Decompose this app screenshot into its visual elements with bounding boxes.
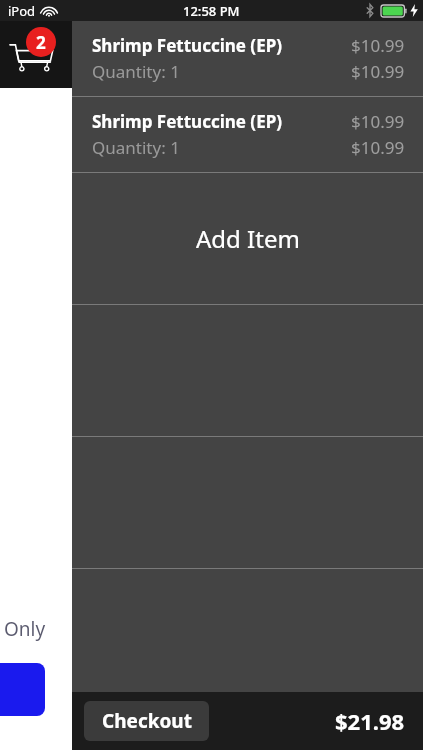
staticText: $10.99 xyxy=(351,60,405,83)
button[interactable]: Checkout xyxy=(84,701,209,741)
staticText: Quantity: 1 xyxy=(92,136,180,159)
staticText: Checkout xyxy=(102,708,192,734)
staticText: iPod xyxy=(8,2,36,20)
staticText: $21.98 xyxy=(335,706,405,736)
staticText: $10.99 xyxy=(351,34,405,57)
button[interactable]: Shrimp Fettuccine (EP) xyxy=(72,97,423,172)
staticText: Add Item xyxy=(196,222,300,255)
staticText: Shrimp Fettuccine (EP) xyxy=(92,110,282,133)
staticText: $10.99 xyxy=(351,110,405,133)
staticText: 12:58 PM xyxy=(183,2,240,20)
button[interactable]: Shrimp Fettuccine (EP) xyxy=(72,21,423,96)
staticText: 2 xyxy=(36,31,46,54)
staticText: Quantity: 1 xyxy=(92,60,180,83)
button[interactable] xyxy=(0,663,45,716)
button[interactable]: Add Item xyxy=(72,173,423,304)
button[interactable]: Cart xyxy=(0,21,72,88)
staticText: Shrimp Fettuccine (EP) xyxy=(92,34,282,57)
staticText: Only xyxy=(4,616,46,642)
staticText: $10.99 xyxy=(351,136,405,159)
